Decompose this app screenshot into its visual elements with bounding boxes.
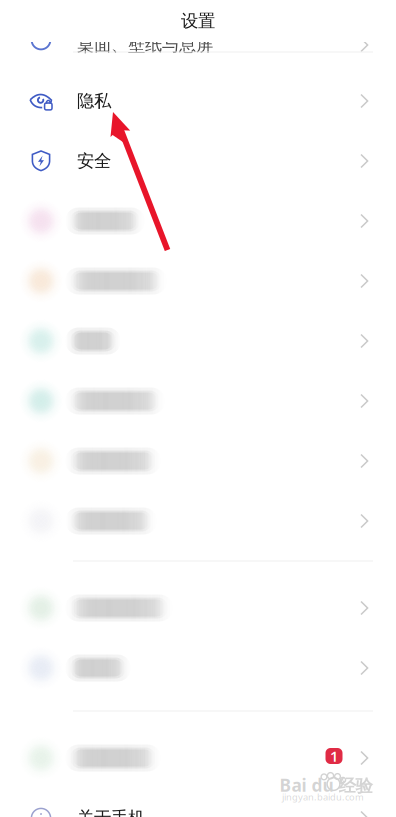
button[interactable]: [0, 491, 396, 551]
staticText: 安全: [77, 150, 111, 172]
staticText: 桌面、壁纸与息屏: [77, 34, 213, 56]
button[interactable]: [0, 638, 396, 698]
button[interactable]: [0, 251, 396, 311]
staticText: 隐私: [77, 90, 111, 112]
button[interactable]: 安全: [0, 131, 396, 191]
button[interactable]: [0, 371, 396, 431]
button[interactable]: [0, 191, 396, 251]
staticText: 1: [330, 746, 338, 766]
button[interactable]: 1: [0, 728, 396, 788]
staticText: 关于手机: [77, 807, 145, 817]
button[interactable]: [0, 431, 396, 491]
staticText: Bai du 经验: [279, 773, 372, 796]
button[interactable]: [0, 578, 396, 638]
staticText: 设置: [181, 10, 215, 32]
staticText: jingyan.baidu.com: [282, 791, 364, 803]
button[interactable]: 隐私: [0, 71, 396, 131]
button[interactable]: [0, 311, 396, 371]
button[interactable]: 关于手机: [0, 788, 396, 817]
button[interactable]: 桌面、壁纸与息屏: [0, 15, 396, 75]
